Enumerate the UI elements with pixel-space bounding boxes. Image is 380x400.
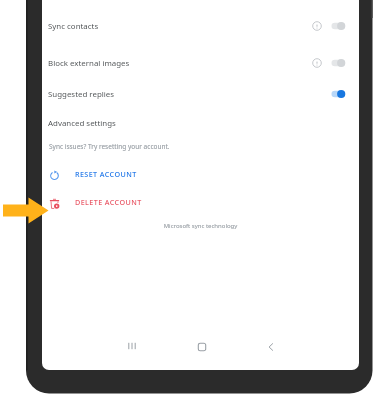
button[interactable]: DELETE ACCOUNT: [42, 190, 359, 214]
button[interactable]: RESET ACCOUNT: [42, 162, 359, 186]
staticText: Sync contacts: [48, 21, 99, 32]
staticText: DELETE ACCOUNT: [75, 197, 142, 207]
button[interactable]: Help: [309, 55, 325, 71]
staticText: Microsoft sync technology: [42, 222, 359, 230]
button[interactable]: Suggested replies: [42, 79, 359, 109]
button[interactable]: Block external images: [42, 48, 359, 78]
staticText: RESET ACCOUNT: [75, 169, 137, 179]
button[interactable]: Recent apps: [112, 334, 152, 358]
button[interactable]: Back: [251, 335, 291, 359]
button[interactable]: Switch on: [331, 86, 346, 102]
button[interactable]: Switch off: [331, 18, 346, 34]
button[interactable]: Help: [309, 18, 325, 34]
button[interactable]: Home: [182, 335, 222, 359]
button[interactable]: Sync contacts: [42, 11, 359, 41]
button[interactable]: Switch off: [331, 55, 346, 71]
staticText: Suggested replies: [48, 89, 115, 100]
staticText: Advanced settings: [48, 118, 116, 129]
staticText: Sync issues? Try resetting your account.: [49, 142, 170, 151]
staticText: Block external images: [48, 58, 130, 69]
button[interactable]: Advanced settings: [42, 108, 359, 138]
